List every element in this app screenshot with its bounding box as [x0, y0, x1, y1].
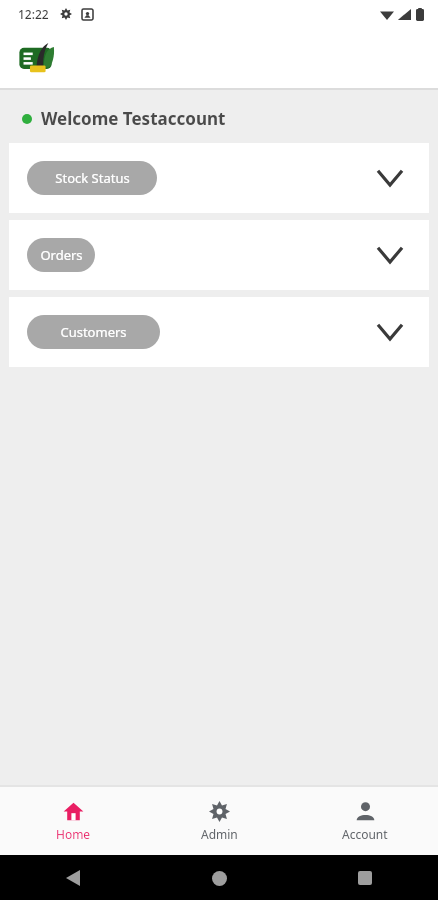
other: Expand Customers: [377, 319, 403, 345]
button[interactable]: Account: [292, 787, 438, 855]
button[interactable]: Stock Status: [9, 143, 429, 213]
staticText: Customers: [60, 323, 127, 341]
button[interactable]: App logo: [18, 41, 64, 75]
button[interactable]: Home: [204, 863, 234, 893]
button[interactable]: Orders: [9, 220, 429, 290]
button[interactable]: Recent apps: [350, 863, 380, 893]
other: Expand Orders: [377, 242, 403, 268]
staticText: Home: [56, 826, 91, 842]
other: Expand Stock Status: [377, 165, 403, 191]
button[interactable]: Customers: [9, 297, 429, 367]
button[interactable]: Home: [0, 787, 146, 855]
button[interactable]: Admin: [146, 787, 292, 855]
staticText: Stock Status: [55, 169, 130, 187]
staticText: 12:22: [18, 6, 49, 22]
staticText: Admin: [201, 826, 238, 842]
staticText: Orders: [40, 246, 83, 264]
staticText: Account: [342, 826, 388, 842]
button[interactable]: Back: [58, 863, 88, 893]
staticText: Welcome Testaccount: [41, 107, 226, 130]
